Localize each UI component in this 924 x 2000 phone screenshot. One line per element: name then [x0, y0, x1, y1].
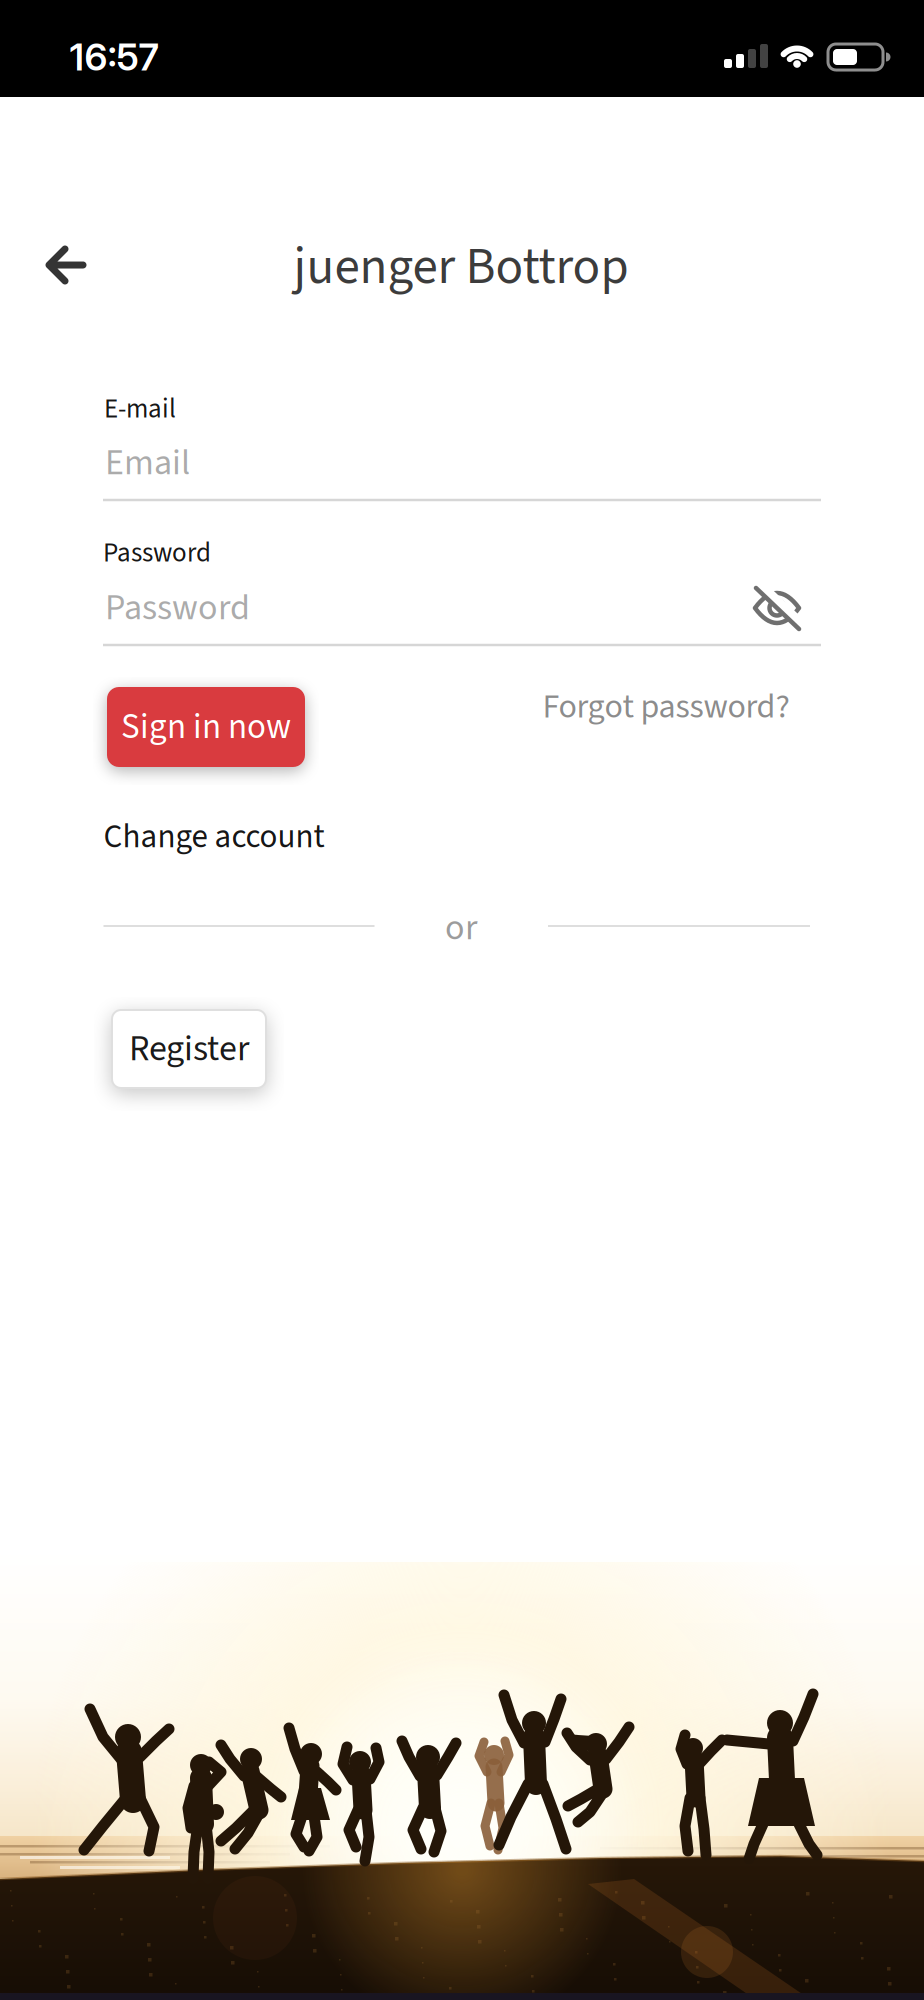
button[interactable]: Sign in now — [107, 687, 305, 767]
button[interactable]: Register — [112, 1010, 266, 1088]
staticText: Change account — [103, 813, 324, 860]
button[interactable]: Back — [28, 227, 104, 303]
staticText: or — [445, 902, 477, 954]
button[interactable]: Forgot password? — [542, 683, 789, 731]
staticText: Password — [103, 534, 211, 572]
staticText: Sign in now — [121, 702, 291, 752]
staticText: Forgot password? — [542, 683, 789, 731]
button[interactable]: Email — [103, 425, 821, 500]
staticText: Password — [105, 582, 250, 634]
staticText: Email — [105, 437, 190, 489]
staticText: juenger Bottrop — [293, 231, 628, 303]
button[interactable]: Password — [103, 570, 821, 645]
staticText: Register — [129, 1023, 249, 1075]
button[interactable]: Change account — [103, 813, 324, 860]
button[interactable]: Show password — [742, 573, 812, 643]
staticText: 16:57 — [69, 34, 158, 80]
staticText: E-mail — [104, 390, 176, 428]
